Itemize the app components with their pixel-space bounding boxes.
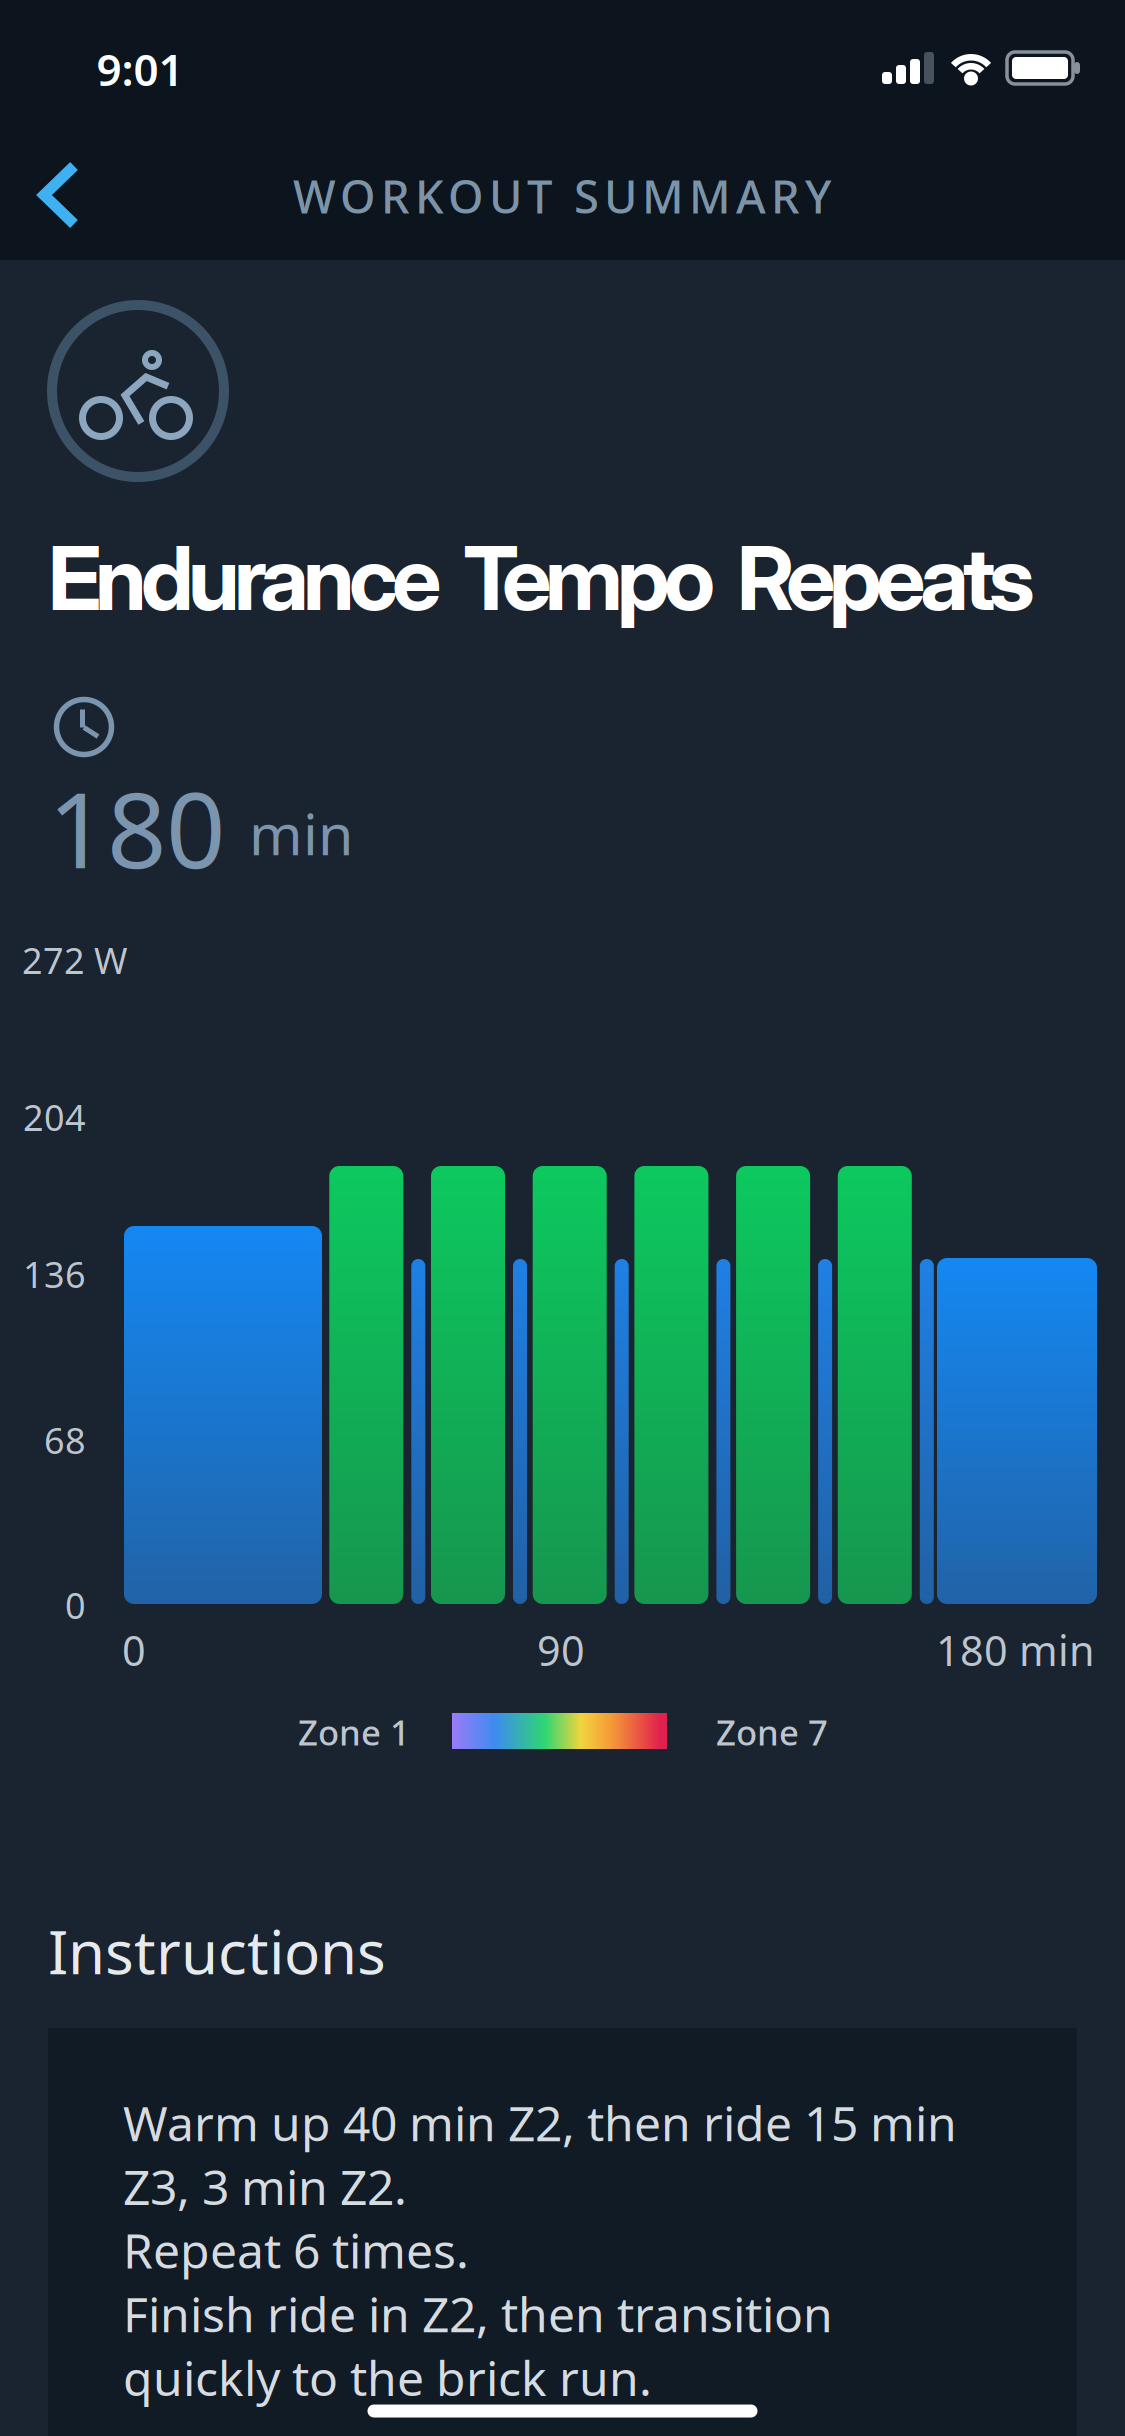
- staticText: WORKOUT SUMMARY: [293, 166, 831, 226]
- staticText: min: [249, 795, 353, 871]
- staticText: Warm up 40 min Z2, then ride 15 min Z3, …: [123, 2091, 957, 2409]
- staticText: Instructions: [48, 1911, 386, 1991]
- staticText: 9:01: [96, 40, 183, 98]
- staticText: 0: [65, 1581, 86, 1629]
- staticText: 272 W: [22, 936, 127, 984]
- staticText: Tempo: [463, 515, 715, 641]
- staticText: 180 min: [936, 1623, 1095, 1677]
- staticText: Zone 7: [716, 1709, 828, 1755]
- staticText: 136: [23, 1250, 86, 1298]
- staticText: 180: [48, 759, 225, 897]
- button[interactable]: [30, 152, 88, 238]
- staticText: Zone 1: [298, 1709, 410, 1755]
- staticText: Repeats: [737, 515, 1035, 641]
- staticText: 68: [44, 1416, 86, 1464]
- staticText: Endurance: [48, 515, 441, 641]
- staticText: 0: [122, 1623, 146, 1677]
- staticText: 90: [537, 1623, 585, 1677]
- staticText: 204: [23, 1093, 86, 1141]
